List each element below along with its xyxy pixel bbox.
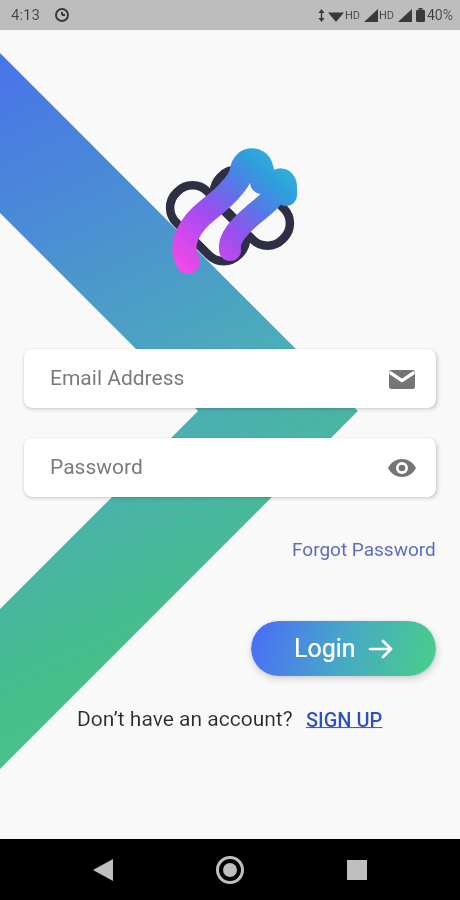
button[interactable]: Email Address <box>24 349 436 408</box>
staticText: 4:13 <box>11 6 40 24</box>
button[interactable]: Login <box>251 621 436 676</box>
button[interactable]: Recents <box>333 846 381 894</box>
staticText: Don’t have an account? <box>77 707 293 732</box>
button[interactable]: Email <box>386 363 418 395</box>
staticText: Login <box>294 634 356 663</box>
staticText: Password <box>50 455 143 480</box>
button[interactable]: Show password <box>386 452 418 484</box>
staticText: Email Address <box>50 366 185 391</box>
staticText: HD <box>345 9 361 22</box>
staticText: SIGN UP <box>306 708 383 731</box>
button[interactable]: Forgot Password <box>284 532 444 566</box>
button[interactable]: SIGN UP <box>306 708 383 731</box>
staticText: Forgot Password <box>292 538 436 560</box>
button[interactable]: Back <box>79 846 127 894</box>
button[interactable]: Password <box>24 438 436 497</box>
staticText: 40% <box>427 7 453 23</box>
button[interactable]: Home <box>206 846 254 894</box>
staticText: HD <box>379 9 395 22</box>
